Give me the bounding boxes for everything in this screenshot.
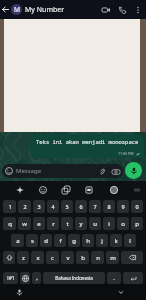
staticText: k [114,237,118,245]
button[interactable]: 5 [61,200,73,213]
staticText: v [66,254,70,262]
button[interactable]: u [89,217,101,230]
staticText: . [113,274,115,282]
button[interactable]: Backspace [121,251,143,264]
button[interactable]: Clipboard [82,183,96,197]
button[interactable]: Emoji [36,183,50,197]
staticText: f [59,237,62,245]
staticText: 2 [23,203,27,210]
staticText: 11:06 PM [118,151,134,156]
staticText: t [66,220,69,228]
button[interactable]: 3 [33,200,45,213]
button[interactable]: q [3,217,16,230]
staticText: M [14,5,20,14]
button[interactable]: y [75,217,87,230]
other: Emoji [5,167,13,175]
button[interactable]: More options [131,3,145,17]
button[interactable]: Settings [107,183,121,197]
button[interactable]: Attach [98,167,107,176]
staticText: 9 [121,203,125,210]
button[interactable]: . [107,272,121,284]
staticText: Message [16,167,42,175]
button[interactable]: 8 [103,200,115,213]
button[interactable]: n [91,251,104,264]
button[interactable]: 0 [131,200,143,213]
staticText: 0 [135,203,139,210]
button[interactable]: Emoji [2,164,123,178]
button[interactable]: Hide keyboard [116,287,126,297]
button[interactable]: , [32,272,41,284]
button[interactable]: g [68,234,80,247]
staticText: a [16,237,20,245]
button[interactable]: Teks ini akan menjadi monospace [30,134,144,158]
staticText: q [8,220,12,228]
staticText: z [22,254,25,262]
button[interactable]: Voice input [14,287,24,297]
button[interactable]: x [31,251,44,264]
staticText: 5 [65,203,69,210]
button[interactable]: 6 [75,200,87,213]
staticText: h [86,237,90,245]
button[interactable]: GIF [59,183,73,197]
button[interactable]: 1 [3,200,16,213]
button[interactable]: Suggestions [13,183,27,197]
staticText: u [93,220,97,228]
staticText: b [81,254,85,262]
button[interactable]: b [76,251,89,264]
button[interactable]: Bahasa Indonesia [43,272,105,284]
button[interactable]: Video call [97,1,114,18]
staticText: p [135,220,139,228]
button[interactable]: r [47,217,59,230]
button[interactable]: z [17,251,29,264]
staticText: w [22,220,27,228]
staticText: 3 [37,203,41,210]
button[interactable]: f [54,234,66,247]
button[interactable]: Enter [123,272,143,284]
staticText: g [72,237,76,245]
staticText: 4 [51,203,55,210]
button[interactable]: o [117,217,129,230]
staticText: i [108,220,110,228]
staticText: 1 [8,203,12,210]
button[interactable]: t [61,217,73,230]
button[interactable]: j [96,234,108,247]
staticText: n [96,254,100,262]
staticText: My Number [25,5,65,15]
button[interactable]: l [124,234,136,247]
button[interactable]: More [130,183,144,197]
button[interactable]: 7 [89,200,101,213]
button[interactable]: 9 [117,200,129,213]
button[interactable]: w [18,217,31,230]
button[interactable]: 2 [18,200,31,213]
button[interactable]: v [61,251,74,264]
button[interactable]: M [11,4,22,15]
staticText: , [36,274,38,282]
button[interactable]: Call [114,1,131,18]
button[interactable]: m [106,251,119,264]
staticText: d [44,237,48,245]
button[interactable]: i [103,217,115,230]
staticText: !#1 [7,275,15,282]
button[interactable]: Camera [111,167,120,176]
staticText: j [101,237,103,245]
button[interactable]: 4 [47,200,59,213]
button[interactable]: c [46,251,59,264]
button[interactable]: k [110,234,122,247]
staticText: x [36,254,40,262]
staticText: 8 [107,203,111,210]
staticText: 7 [93,203,97,210]
button[interactable]: s [26,234,38,247]
button[interactable]: p [131,217,143,230]
button[interactable]: d [40,234,52,247]
button[interactable]: Language [20,272,30,284]
staticText: Bahasa Indonesia [55,275,93,281]
button[interactable]: !#1 [3,272,18,284]
button[interactable]: Shift [3,251,15,264]
button[interactable]: Back [0,4,11,15]
button[interactable]: e [33,217,45,230]
staticText: o [121,220,125,228]
staticText: r [52,220,55,228]
button[interactable]: h [82,234,94,247]
button[interactable]: a [11,234,24,247]
button[interactable]: Voice message [125,162,142,179]
